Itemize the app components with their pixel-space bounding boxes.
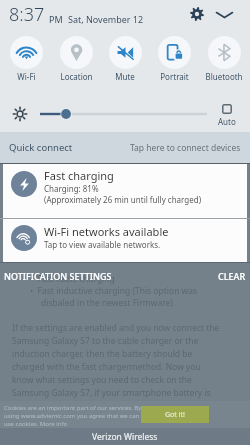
button[interactable]: Wi-Fi networks available <box>3 219 247 262</box>
staticText: Wi-Fi <box>17 71 36 82</box>
staticText: (Approximately 26 min until fully charge… <box>44 194 202 205</box>
staticText: • Fast inductive charging (This option w… <box>30 285 198 297</box>
staticText: Tap to view available networks. <box>44 239 161 250</box>
button[interactable]: Settings <box>185 2 209 26</box>
staticText: Sat, November 12 <box>68 13 144 25</box>
staticText: Tap here to connect devices <box>130 142 241 154</box>
staticText: Mute <box>115 71 135 82</box>
button[interactable]: CLEAR <box>218 270 246 282</box>
staticText: • Fast cable charging <box>30 273 115 285</box>
button[interactable]: NOTIFICATION SETTINGS <box>4 270 112 282</box>
button[interactable]: Portrait <box>151 36 197 82</box>
staticText: Portrait <box>160 71 189 82</box>
button[interactable]: Collapse panel <box>211 2 237 28</box>
staticText: Got it! <box>165 410 185 420</box>
staticText: NOTIFICATION SETTINGS <box>4 270 112 282</box>
staticText: CLEAR <box>218 270 246 282</box>
button[interactable]: Auto brightness <box>212 104 242 127</box>
staticText: Bluetooth <box>205 71 243 82</box>
button[interactable]: Location <box>53 36 99 82</box>
staticText: Wi-Fi networks available <box>44 224 169 239</box>
button[interactable]: Bluetooth <box>201 36 247 82</box>
button[interactable]: Brightness <box>34 107 213 121</box>
button[interactable]: Quick connect <box>0 132 250 163</box>
staticText: Charging: 81% <box>44 183 99 194</box>
button[interactable]: Got it! <box>141 406 209 423</box>
staticText: Cookies are an important part of our ser… <box>4 404 142 428</box>
staticText: Fast charging <box>44 168 114 183</box>
button[interactable]: Fast charging <box>3 164 247 218</box>
staticText: Location <box>60 71 93 82</box>
staticText: If the settings are enabled and you now … <box>12 322 220 399</box>
staticText: Verizon Wireless <box>92 431 158 443</box>
button[interactable]: Mute <box>102 36 148 82</box>
staticText: Auto <box>218 116 236 127</box>
staticText: PM <box>49 13 63 25</box>
staticText: 8:37 <box>9 2 45 27</box>
button[interactable]: Wi-Fi <box>3 36 49 82</box>
staticText: disbaled in the newest Firmware) <box>30 297 173 309</box>
staticText: Quick connect <box>9 141 73 154</box>
